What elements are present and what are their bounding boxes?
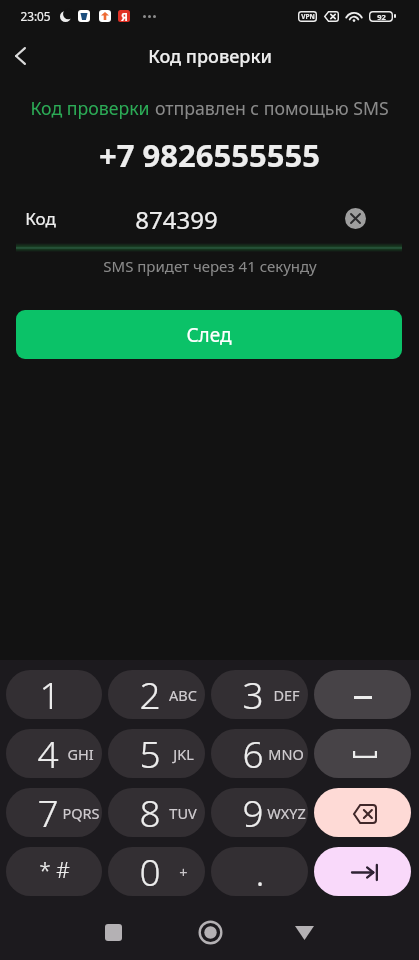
staticText: След xyxy=(186,322,232,348)
button[interactable]: 1 xyxy=(6,670,102,719)
staticText: 5 xyxy=(139,729,161,777)
staticText: 1 xyxy=(39,670,61,718)
staticText: 9 xyxy=(242,788,264,836)
button[interactable]: Clear code xyxy=(345,208,366,229)
button[interactable]: Space xyxy=(314,729,411,778)
staticText: 6 xyxy=(242,729,264,777)
button[interactable]: Back xyxy=(0,32,44,80)
staticText: 874399 xyxy=(135,203,218,233)
button[interactable]: 3 xyxy=(211,670,308,719)
button[interactable]: Enter xyxy=(314,847,411,896)
staticText: 23:05 xyxy=(20,8,51,24)
button[interactable]: След xyxy=(16,310,402,359)
staticText: 3 xyxy=(242,670,264,718)
staticText: 8 xyxy=(139,788,161,836)
button[interactable]: 0 xyxy=(108,847,205,896)
staticText: VPN xyxy=(301,12,315,21)
staticText: Я xyxy=(121,10,128,22)
staticText: MNO xyxy=(268,744,304,764)
staticText: PQRS xyxy=(62,803,100,823)
button[interactable]: 6 xyxy=(211,729,308,778)
button[interactable]: Dash xyxy=(314,670,411,719)
button[interactable]: 7 xyxy=(6,788,102,837)
staticText: 7 xyxy=(37,788,59,836)
button[interactable]: Back xyxy=(281,910,327,956)
staticText: 92 xyxy=(377,12,386,22)
staticText: 4 xyxy=(37,729,59,777)
button[interactable]: 8 xyxy=(108,788,205,837)
staticText: TUV xyxy=(169,803,197,823)
button[interactable]: . xyxy=(211,847,308,896)
button[interactable]: Backspace xyxy=(314,788,411,837)
staticText: отправлен с помощью SMS xyxy=(150,96,389,120)
staticText: SMS придет через 41 секунду xyxy=(103,256,317,276)
button[interactable]: * # xyxy=(6,847,102,896)
button[interactable]: Home xyxy=(187,909,233,955)
staticText: Код xyxy=(25,207,56,230)
button[interactable]: 9 xyxy=(211,788,308,837)
staticText: GHI xyxy=(67,744,94,764)
staticText: 0 xyxy=(139,847,161,895)
staticText: Код проверки xyxy=(30,96,150,120)
staticText: DEF xyxy=(273,685,300,705)
button[interactable]: Recents xyxy=(90,909,136,955)
button[interactable]: 5 xyxy=(108,729,205,778)
staticText: . xyxy=(255,847,265,895)
staticText: 2 xyxy=(139,670,161,718)
staticText: + xyxy=(179,862,188,882)
staticText: Код проверки xyxy=(148,44,272,69)
button[interactable]: 4 xyxy=(6,729,102,778)
button[interactable]: 2 xyxy=(108,670,205,719)
staticText: ABC xyxy=(169,685,197,705)
staticText: +7 9826555555 xyxy=(99,134,320,176)
staticText: JKL xyxy=(173,744,194,764)
staticText: * # xyxy=(39,856,70,885)
staticText: WXYZ xyxy=(267,803,306,823)
